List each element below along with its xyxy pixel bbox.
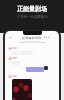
staticText: 正能量剧场 [17,5,47,13]
button[interactable]: More options [44,37,50,38]
button[interactable] [12,79,32,100]
button[interactable] [26,67,44,72]
button[interactable]: 正能量剧场群 [5,35,59,40]
staticText: 2024年3月12日 下午2:02 [19,40,46,43]
staticText: 记录每一份温暖瞬间 [17,15,48,19]
button[interactable]: Back [8,35,13,40]
staticText: 正能量剧场群 [22,36,42,40]
